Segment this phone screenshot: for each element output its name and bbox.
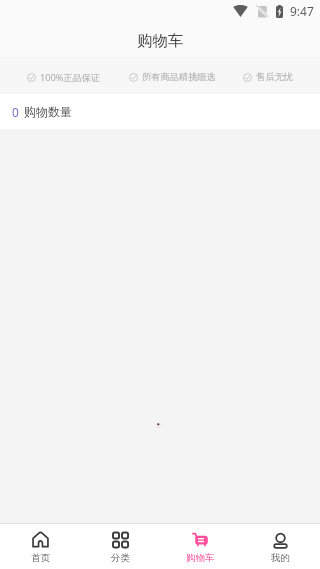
staticText: 售后无忧 — [256, 71, 293, 83]
staticText: 购物车 — [186, 552, 215, 564]
button[interactable]: Shopping cart — [160, 524, 240, 569]
staticText: 购物车 — [137, 31, 184, 51]
button[interactable]: Profile — [240, 524, 320, 569]
staticText: 首页 — [31, 552, 50, 564]
staticText: 所有商品精挑细选 — [142, 71, 216, 83]
staticText: 购物数量 — [24, 104, 72, 119]
staticText: 分类 — [111, 552, 130, 564]
button[interactable]: Home — [0, 524, 80, 569]
staticText: 100%正品保证 — [40, 71, 101, 84]
staticText: 0 — [12, 104, 19, 120]
staticText: 我的 — [271, 552, 290, 564]
staticText: 9:47 — [290, 3, 314, 19]
button[interactable]: Categories — [80, 524, 160, 569]
